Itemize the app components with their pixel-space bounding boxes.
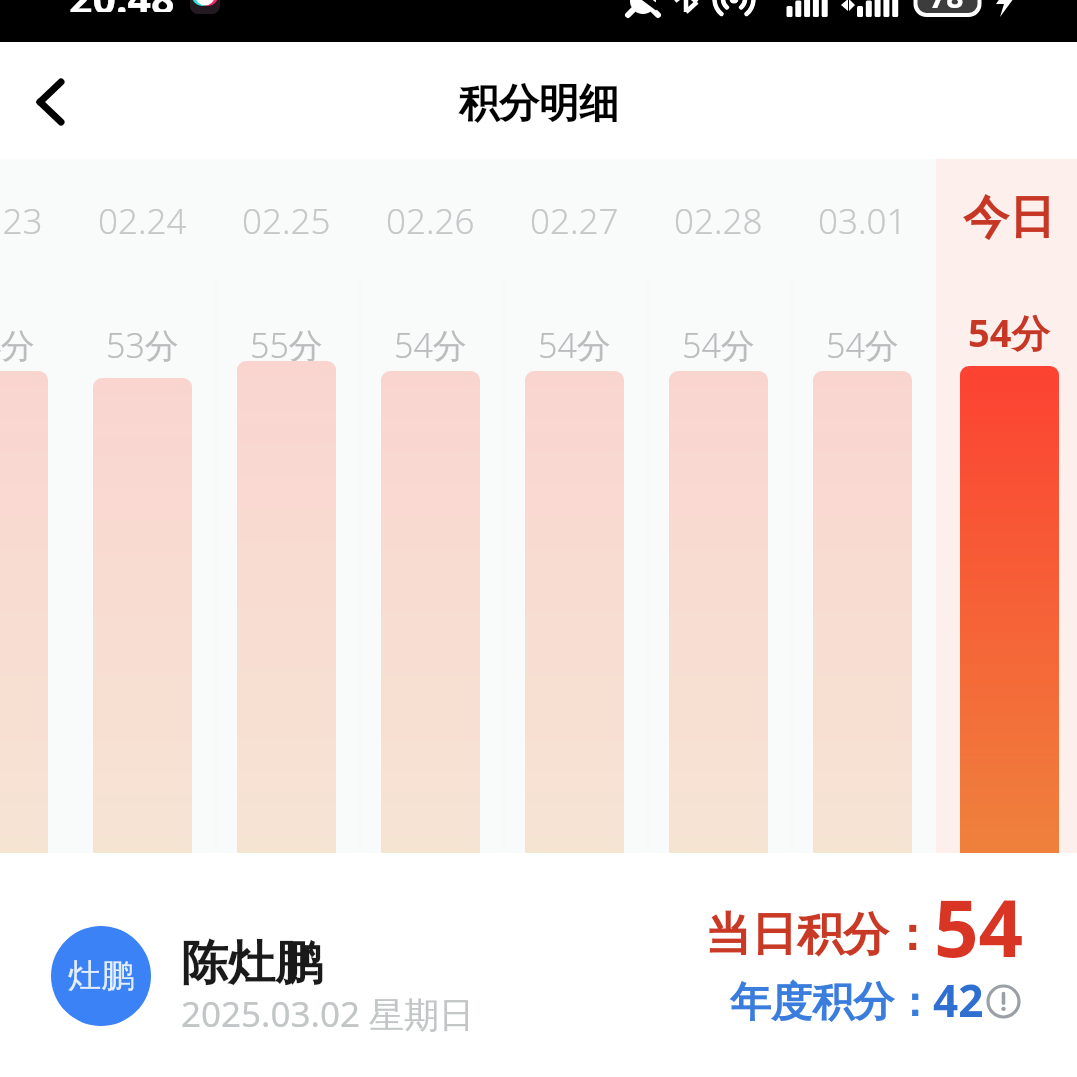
- button[interactable]: 年度积分：: [722, 966, 1030, 1028]
- staticText: 02.24: [98, 197, 187, 245]
- staticText: 54: [934, 874, 1024, 964]
- staticText: 02.28: [674, 197, 763, 245]
- staticText: 53分: [106, 322, 179, 368]
- staticText: 54分: [394, 322, 467, 368]
- button[interactable]: 02.28: [646, 159, 790, 853]
- staticText: 02.23: [0, 197, 43, 245]
- staticText: 02.26: [386, 197, 475, 245]
- button[interactable]: 02.26: [358, 159, 502, 853]
- staticText: 54分: [538, 322, 611, 368]
- staticText: 54分: [968, 306, 1050, 358]
- staticText: 02.27: [530, 197, 619, 245]
- staticText: 2025.03.02 星期日: [181, 990, 475, 1038]
- button[interactable]: 02.23: [0, 159, 70, 853]
- button[interactable]: Back: [12, 60, 86, 142]
- button[interactable]: 当日积分：: [700, 874, 1030, 964]
- other: Points info: [986, 984, 1021, 1019]
- staticText: 年度积分：: [730, 977, 935, 1029]
- staticText: 55分: [250, 322, 323, 368]
- staticText: 灶鹏: [68, 955, 134, 997]
- staticText: 陈灶鹏: [181, 934, 322, 993]
- button[interactable]: 02.25: [214, 159, 358, 853]
- staticText: 20:48: [69, 0, 175, 12]
- button[interactable]: 02.24: [70, 159, 214, 853]
- staticText: 54分: [682, 322, 755, 368]
- staticText: 42: [933, 970, 984, 1030]
- staticText: 03.01: [818, 197, 907, 245]
- button[interactable]: 灶鹏: [40, 918, 520, 1034]
- button[interactable]: 02.27: [502, 159, 646, 853]
- button[interactable]: 03.01: [790, 159, 934, 853]
- staticText: 今日: [963, 189, 1055, 247]
- staticText: 02.25: [242, 197, 331, 245]
- staticText: 54分: [0, 322, 35, 368]
- staticText: 当日积分：: [705, 906, 935, 964]
- staticText: 54分: [826, 322, 899, 368]
- button[interactable]: 今日: [937, 159, 1077, 853]
- staticText: 积分明细: [459, 78, 619, 128]
- staticText: 78: [929, 0, 964, 17]
